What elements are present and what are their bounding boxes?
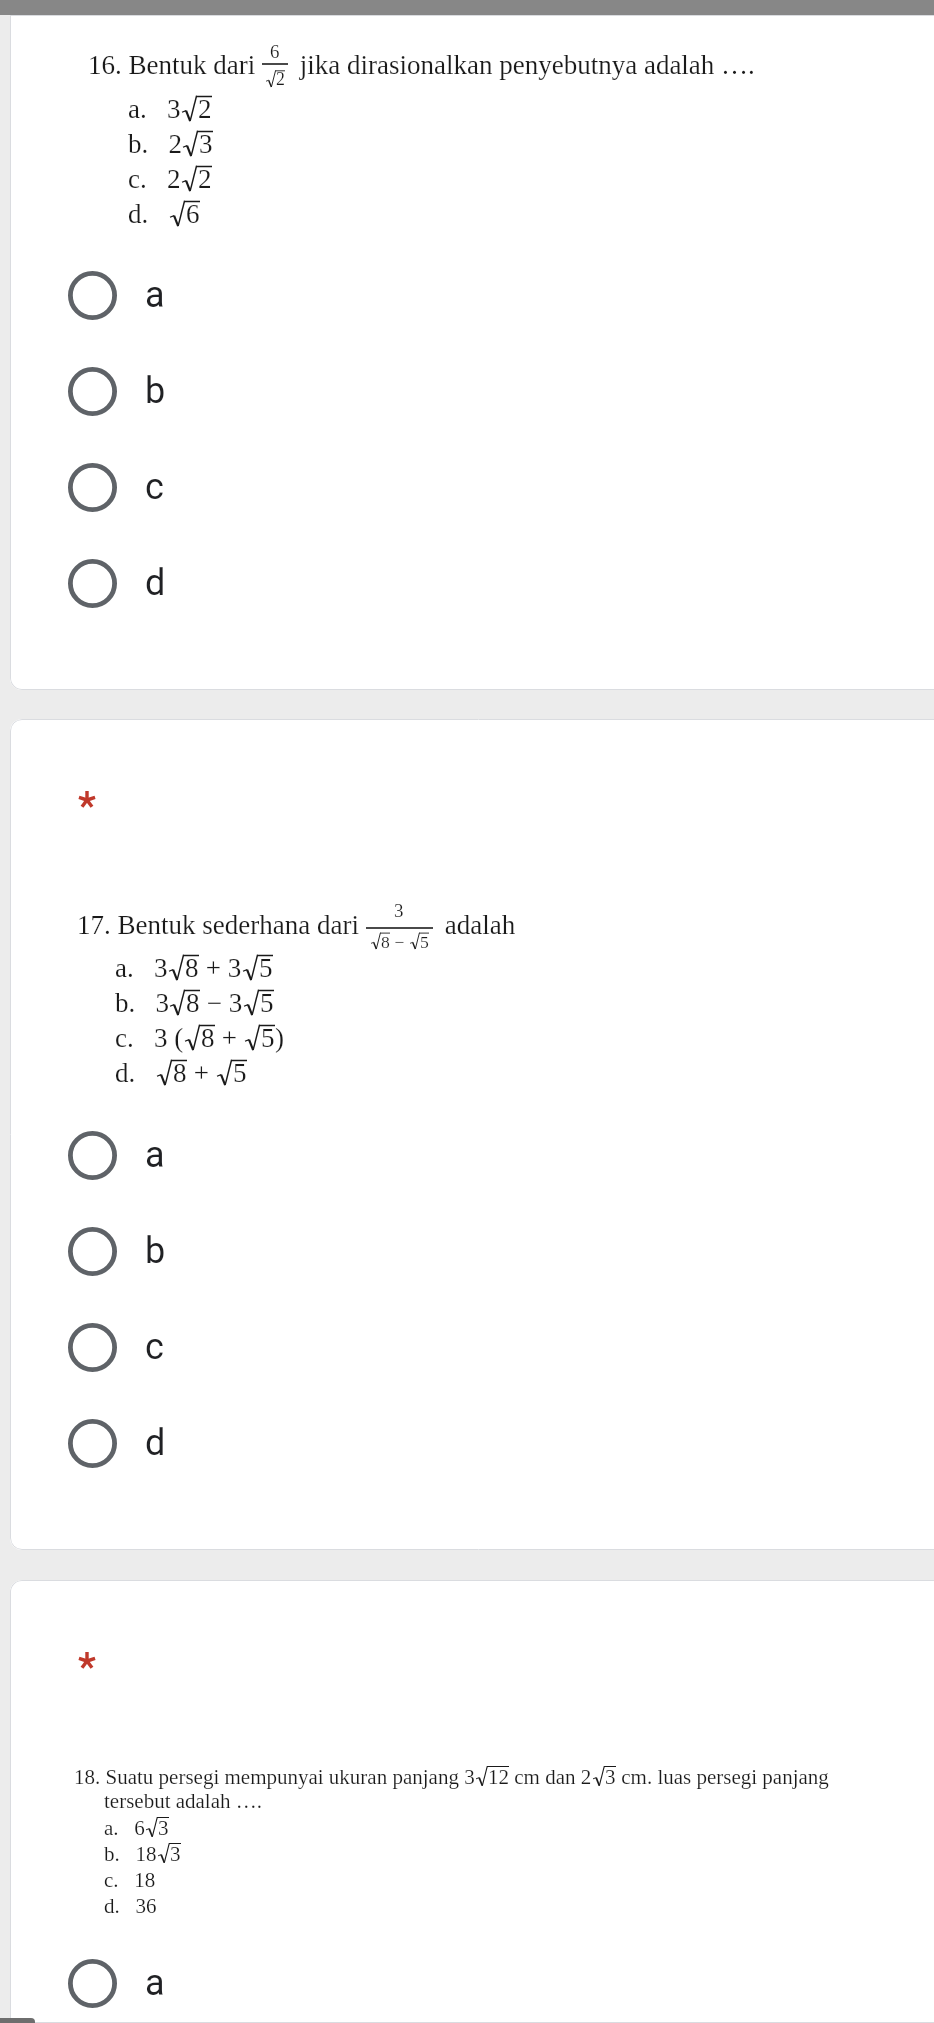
button[interactable]: d [10,535,934,631]
staticText: a. 3 [115,953,168,983]
staticText: 3 [605,1765,616,1788]
staticText: d [145,1422,166,1464]
staticText: 5 [233,1058,247,1088]
staticText: + 3 [199,953,242,983]
staticText: + [187,1058,216,1088]
button[interactable]: d [10,1395,934,1491]
staticText: 8 [185,953,199,983]
staticText: a. 3 [128,94,181,124]
staticText: 8 [173,1058,187,1088]
staticText: a [145,1134,165,1176]
staticText: c [145,466,164,508]
staticText: 5 [420,932,429,951]
staticText: 17. Bentuk sederhana dari [77,910,366,940]
staticText: 6 [186,199,200,229]
staticText: 3 [394,900,404,921]
button[interactable]: a [10,247,934,343]
staticText: b. 2 [128,129,182,159]
staticText: − 3 [200,988,243,1018]
button[interactable]: b [10,1203,934,1299]
staticText: d [145,562,166,604]
button[interactable]: c [10,1299,934,1395]
staticText: 5 [260,988,274,1018]
staticText: cm. luas persegi panjang [616,1765,829,1788]
button[interactable]: b [10,343,934,439]
staticText: − [390,932,409,951]
staticText: 12 [488,1765,509,1788]
staticText: 3 [170,1842,181,1865]
staticText: 3 [199,129,213,159]
staticText: cm dan 2 [509,1765,592,1788]
staticText: adalah [438,910,516,940]
staticText: c. 2 [128,164,181,194]
staticText: 8 [201,1023,215,1053]
other: Required question [78,791,96,809]
button[interactable]: a [10,1943,934,2023]
staticText: 16. Bentuk dari [88,50,262,80]
staticText: 8 [186,988,200,1018]
staticText: 2 [276,69,285,89]
button[interactable]: c [10,439,934,535]
staticText: 5 [261,1023,275,1053]
staticText: jika dirasionalkan penyebutnya adalah …. [293,50,755,80]
staticText: 5 [259,953,273,983]
staticText: b [145,370,166,412]
staticText: b. 3 [115,988,169,1018]
staticText: 2 [198,164,212,194]
staticText: 2 [198,94,212,124]
staticText: d. [128,199,169,229]
staticText: 3 [158,1816,169,1839]
staticText: a [145,1962,165,2004]
staticText: b [145,1230,166,1272]
staticText: b. 18 [104,1842,157,1865]
staticText: c [145,1326,164,1368]
other: Required question [78,1652,96,1670]
staticText: a [145,274,165,316]
staticText: a. 6 [104,1816,145,1839]
staticText: tersebut adalah …. [104,1789,263,1812]
staticText: 8 [381,932,390,951]
staticText: c. 3 ( [115,1023,184,1053]
staticText: d. 36 [104,1894,157,1917]
button[interactable]: a [10,1107,934,1203]
staticText: c. 18 [104,1868,156,1891]
staticText: + [215,1023,244,1053]
staticText: ) [275,1023,284,1053]
staticText: 18. Suatu persegi mempunyai ukuran panja… [74,1765,475,1788]
staticText: d. [115,1058,156,1088]
staticText: 6 [270,41,280,62]
